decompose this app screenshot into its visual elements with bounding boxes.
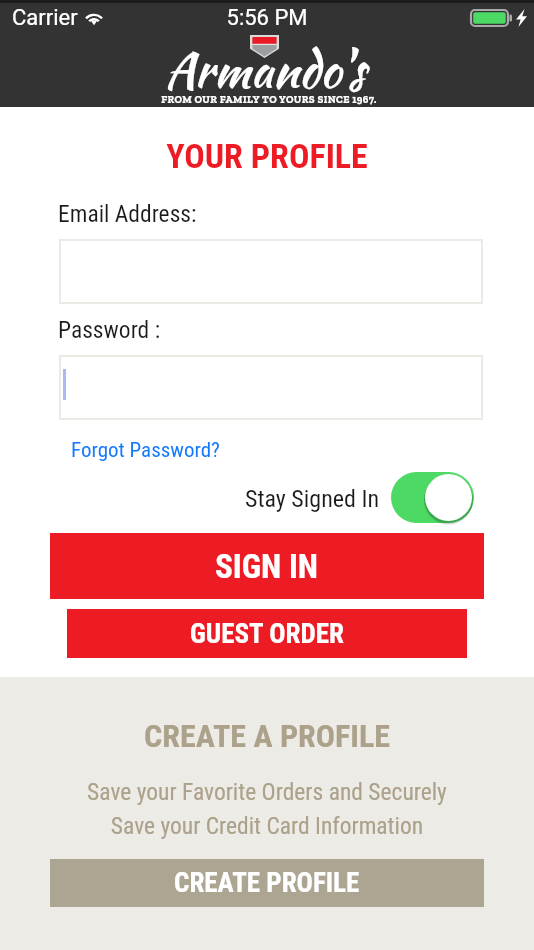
staticText: Forgot Password? [71, 438, 220, 463]
staticText: YOUR PROFILE [0, 136, 534, 176]
staticText: Email Address: [58, 200, 197, 228]
staticText: Password : [58, 316, 161, 344]
staticText: SIGN IN [215, 547, 319, 586]
button[interactable]: Password text field [59, 355, 483, 420]
button[interactable]: Email Address text field [59, 239, 483, 304]
button[interactable]: Forgot Password? [71, 438, 220, 463]
button[interactable]: Stay Signed In toggle [391, 472, 476, 525]
staticText: GUEST ORDER [190, 618, 344, 650]
staticText: Save your Favorite Orders and Securely [0, 778, 534, 806]
staticText: Armando's [0, 35, 532, 105]
staticText: Save your Credit Card Information [0, 812, 534, 840]
button[interactable]: GUEST ORDER [67, 609, 467, 658]
button[interactable]: SIGN IN [50, 533, 484, 599]
staticText: Stay Signed In [245, 485, 380, 513]
staticText: 5:56 PM [0, 5, 534, 31]
staticText: FROM OUR FAMILY TO YOURS SINCE 1967. [2, 93, 534, 106]
button[interactable]: CREATE PROFILE [50, 859, 484, 907]
staticText: CREATE PROFILE [174, 867, 360, 899]
staticText: Carrier [12, 5, 78, 31]
staticText: CREATE A PROFILE [0, 717, 534, 755]
